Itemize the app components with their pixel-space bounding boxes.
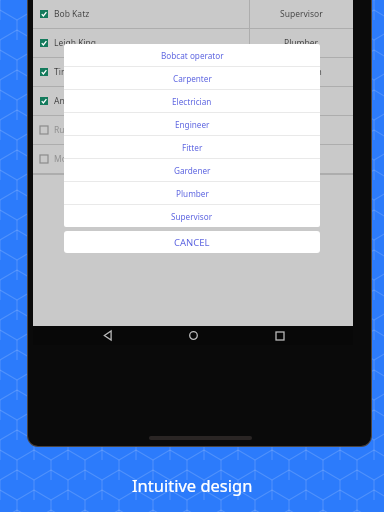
staticText: Intuitive design <box>132 474 253 496</box>
staticText: Bob Katz <box>54 8 90 20</box>
staticText: Plumber <box>284 37 319 49</box>
staticText: Electrician <box>281 66 322 78</box>
staticText: Anna Bell <box>54 95 92 107</box>
staticText: Gardener <box>282 153 320 165</box>
staticText: Carpenter <box>173 73 212 84</box>
button[interactable]: Bobcat operator <box>64 44 320 66</box>
staticText: Supervisor <box>280 8 323 20</box>
button[interactable]: Anna Bell <box>33 87 353 115</box>
staticText: Leigh King <box>54 37 97 49</box>
staticText: Russ Hall <box>54 124 91 136</box>
staticText: Fitter <box>290 124 312 136</box>
button[interactable]: Supervisor <box>64 205 320 227</box>
button[interactable]: Back <box>94 326 120 345</box>
staticText: Electrician <box>172 96 212 107</box>
staticText: Engineer <box>175 119 210 130</box>
button[interactable]: Tim Lee <box>33 58 353 86</box>
staticText: Fitter <box>182 142 203 153</box>
staticText: Bobcat operator <box>161 50 224 61</box>
button[interactable]: Recent apps <box>267 326 293 345</box>
button[interactable]: Leigh King <box>33 29 353 57</box>
button[interactable]: Plumber <box>64 182 320 204</box>
button[interactable]: Russ Hall <box>33 116 353 144</box>
button[interactable]: Bob Katz <box>33 0 353 28</box>
button[interactable]: Engineer <box>64 113 320 135</box>
staticText: CANCEL <box>174 236 210 249</box>
button[interactable]: Fitter <box>64 136 320 158</box>
button[interactable]: Gardener <box>64 159 320 181</box>
button[interactable]: Carpenter <box>64 67 320 89</box>
button[interactable]: CANCEL <box>64 231 320 253</box>
staticText: Tim Lee <box>54 66 86 78</box>
staticText: Plumber <box>176 188 209 199</box>
staticText: Gardener <box>174 165 211 176</box>
staticText: Moe Dunn <box>54 153 96 165</box>
button[interactable]: Moe Dunn <box>33 145 353 173</box>
button[interactable]: Home <box>180 326 206 345</box>
button[interactable]: Electrician <box>64 90 320 112</box>
staticText: Supervisor <box>171 211 213 222</box>
